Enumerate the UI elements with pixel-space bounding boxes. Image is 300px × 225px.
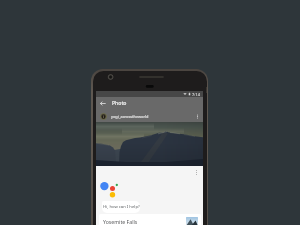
button[interactable]: Yosemite Falls [99,214,201,225]
button[interactable]: Back [99,100,106,107]
button[interactable]: More options [192,111,202,121]
staticText: yogi_acrosstheworld [111,114,149,119]
staticText: Hi, how can I help? [103,204,140,210]
button[interactable]: More options [191,167,201,177]
staticText: Photo [112,100,127,107]
staticText: Yosemite Falls [103,218,138,225]
staticText: 7:14 [192,92,200,97]
